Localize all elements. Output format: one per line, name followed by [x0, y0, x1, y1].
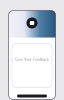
- staticText: Give Your Feedback: [15, 56, 49, 62]
